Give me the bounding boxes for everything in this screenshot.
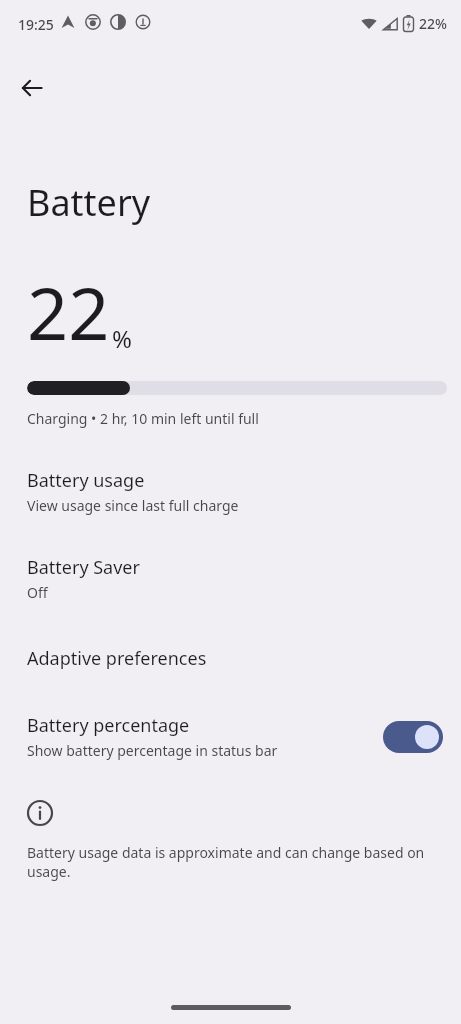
button[interactable]: Back bbox=[12, 68, 52, 108]
staticText: Charging • 2 hr, 10 min left until full bbox=[27, 409, 259, 428]
staticText: View usage since last full charge bbox=[27, 496, 239, 515]
button[interactable]: Adaptive preferences bbox=[0, 642, 461, 675]
staticText: Off bbox=[27, 583, 48, 602]
button[interactable]: Battery percentage toggle, on bbox=[383, 721, 443, 753]
staticText: Adaptive preferences bbox=[27, 646, 207, 671]
other: Information bbox=[26, 799, 54, 827]
staticText: % bbox=[112, 322, 132, 355]
staticText: Battery usage bbox=[27, 468, 145, 493]
staticText: 19:25 bbox=[18, 15, 54, 34]
button[interactable]: Battery usage bbox=[0, 466, 461, 517]
staticText: Show battery percentage in status bar bbox=[27, 741, 278, 760]
button[interactable]: Battery Saver bbox=[0, 553, 461, 604]
staticText: Battery usage data is approximate and ca… bbox=[27, 843, 441, 881]
button[interactable]: Battery percentage bbox=[0, 713, 461, 760]
staticText: Battery bbox=[27, 178, 151, 227]
staticText: 22 bbox=[27, 263, 110, 361]
staticText: Battery percentage bbox=[27, 713, 190, 738]
staticText: Battery Saver bbox=[27, 555, 140, 580]
staticText: 22% bbox=[419, 14, 447, 33]
